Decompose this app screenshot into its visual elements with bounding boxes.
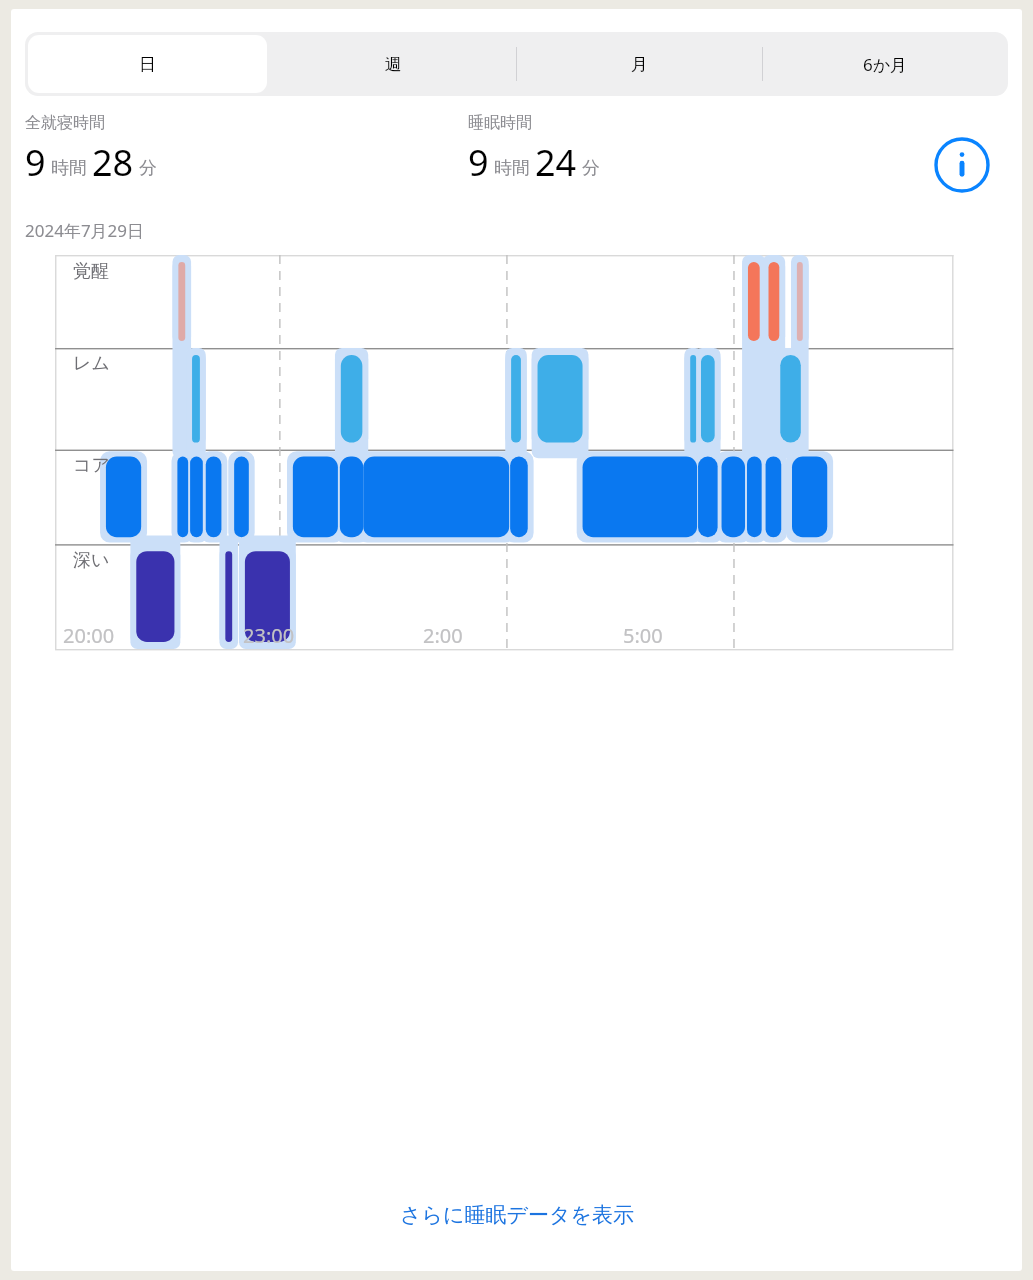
staticText: 週 bbox=[385, 54, 402, 75]
staticText: 2024年7月29日 bbox=[25, 219, 145, 242]
staticText: 睡眠時間 bbox=[468, 113, 532, 133]
staticText: 分 bbox=[139, 157, 157, 180]
staticText: 月 bbox=[631, 54, 648, 75]
button[interactable]: 週 bbox=[270, 32, 516, 96]
staticText: コア bbox=[73, 454, 110, 477]
staticText: 分 bbox=[582, 157, 600, 180]
staticText: 24 bbox=[535, 138, 577, 187]
staticText: 9 bbox=[25, 138, 46, 187]
staticText: 時間 bbox=[51, 157, 87, 180]
staticText: 深い bbox=[73, 549, 110, 572]
staticText: レム bbox=[73, 352, 110, 375]
staticText: 6か月 bbox=[863, 53, 908, 76]
button[interactable]: 6か月 bbox=[762, 32, 1008, 96]
button[interactable]: 月 bbox=[516, 32, 762, 96]
staticText: 23:00 bbox=[243, 622, 295, 649]
staticText: 5:00 bbox=[623, 622, 663, 649]
button[interactable]: 日 bbox=[25, 32, 270, 96]
staticText: 20:00 bbox=[63, 622, 115, 649]
button[interactable]: 詳しい情報 bbox=[933, 136, 991, 194]
button[interactable]: さらに睡眠データを表示 bbox=[11, 1179, 1022, 1251]
staticText: 2:00 bbox=[423, 622, 463, 649]
staticText: 日 bbox=[139, 54, 156, 75]
staticText: 9 bbox=[468, 138, 489, 187]
staticText: さらに睡眠データを表示 bbox=[400, 1202, 634, 1228]
staticText: 時間 bbox=[494, 157, 530, 180]
staticText: 覚醒 bbox=[73, 260, 109, 283]
staticText: 28 bbox=[92, 138, 134, 187]
staticText: 全就寝時間 bbox=[25, 113, 105, 133]
